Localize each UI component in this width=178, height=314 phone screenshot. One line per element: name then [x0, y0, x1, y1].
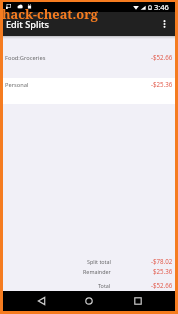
button[interactable]: Back — [30, 291, 52, 311]
staticText: Edit Splits — [6, 18, 49, 31]
staticText: -$78.02 — [151, 257, 173, 265]
button[interactable]: Recents — [127, 291, 149, 311]
button[interactable]: Home — [78, 291, 100, 311]
staticText: Total — [98, 282, 111, 289]
button[interactable]: Personal — [3, 78, 175, 104]
staticText: -$52.66 — [151, 53, 173, 61]
staticText: Remainder — [83, 268, 111, 275]
staticText: $25.36 — [153, 267, 173, 275]
button[interactable]: More options — [153, 13, 175, 35]
staticText: -$52.66 — [151, 281, 173, 289]
staticText: 3:46 — [154, 2, 169, 12]
staticText: Food:Groceries — [5, 54, 46, 62]
staticText: hack-cheat.org — [2, 5, 99, 22]
staticText: Personal — [5, 81, 29, 89]
staticText: Split total — [87, 258, 111, 265]
button[interactable]: Food:Groceries — [3, 39, 175, 78]
staticText: -$25.36 — [151, 80, 173, 88]
